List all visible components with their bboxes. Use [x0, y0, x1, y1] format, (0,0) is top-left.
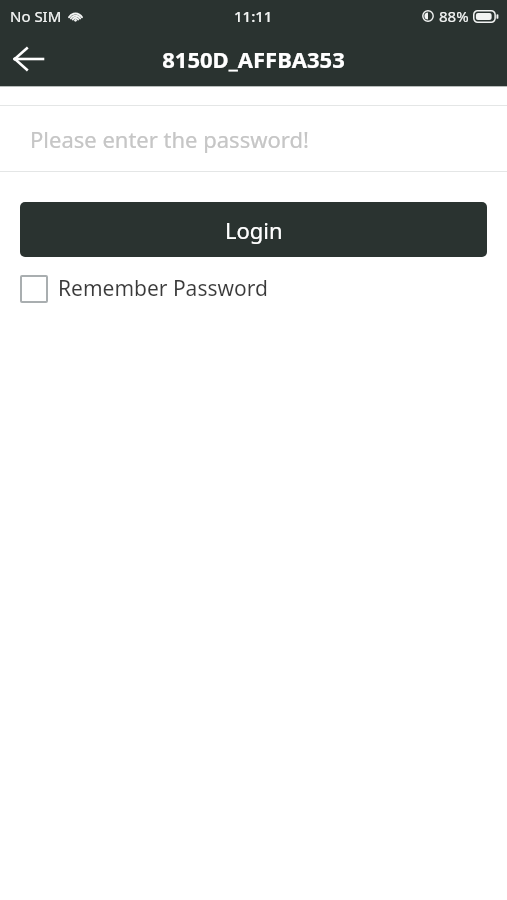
button[interactable]: Please enter the password!: [0, 106, 507, 171]
staticText: Login: [225, 215, 283, 245]
button[interactable]: Back: [0, 31, 56, 86]
staticText: Remember Password: [58, 274, 268, 303]
staticText: 88%: [439, 6, 469, 26]
staticText: Please enter the password!: [30, 124, 309, 154]
button[interactable]: Remember Password: [20, 274, 268, 303]
staticText: 8150D_AFFBA353: [162, 44, 345, 74]
button[interactable]: Login: [20, 202, 487, 257]
staticText: No SIM: [10, 6, 62, 26]
staticText: 11:11: [234, 6, 273, 26]
